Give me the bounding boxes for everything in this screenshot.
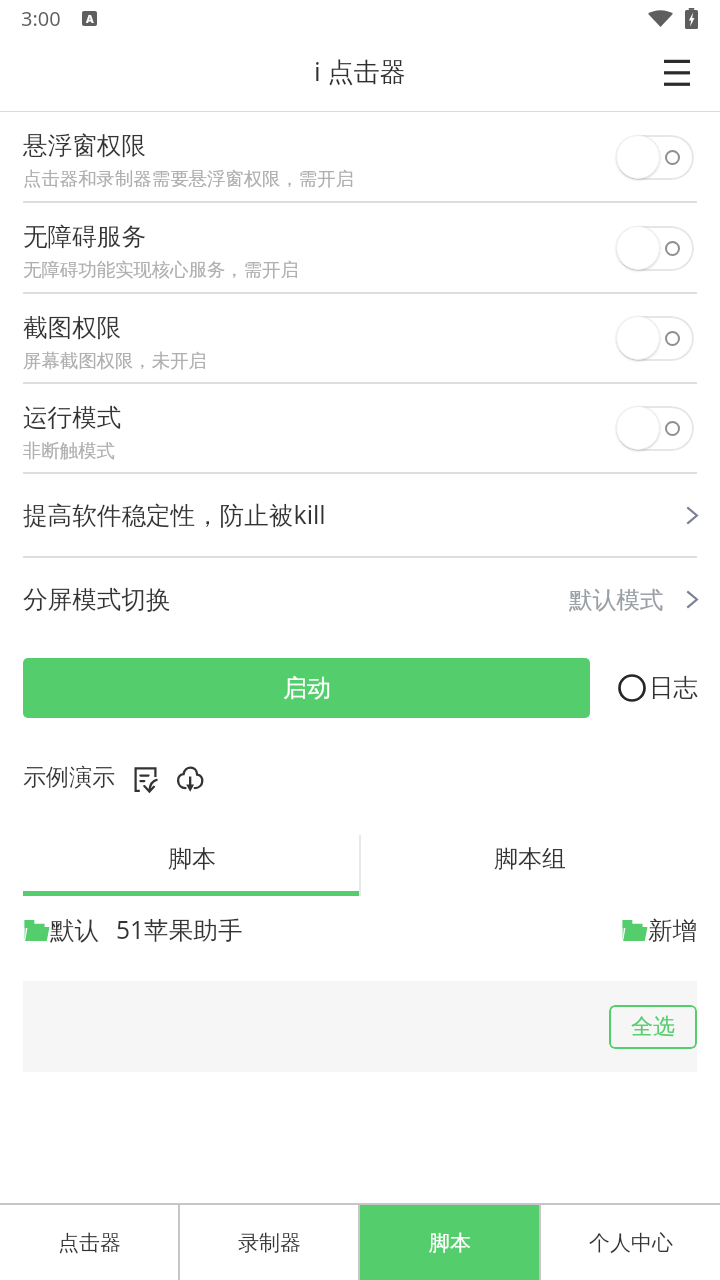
staticText: i 点击器 — [314, 53, 406, 89]
staticText: 录制器 — [238, 1230, 301, 1256]
staticText: 屏幕截图权限，未开启 — [23, 349, 207, 372]
button[interactable]: 提高软件稳定性，防止被kill — [0, 474, 720, 556]
button[interactable]: Menu — [649, 44, 705, 100]
button[interactable]: 开关 悬浮窗权限 — [615, 133, 695, 181]
staticText: 非断触模式 — [23, 439, 115, 462]
button[interactable]: 脚本 — [360, 1205, 539, 1280]
button[interactable]: 录制器 — [180, 1205, 358, 1280]
staticText: 日志 — [649, 672, 699, 703]
staticText: 悬浮窗权限 — [23, 130, 146, 161]
button[interactable]: 开关 无障碍服务 — [615, 224, 695, 272]
staticText: 无障碍功能实现核心服务，需开启 — [23, 258, 299, 281]
button[interactable]: 新增 — [621, 915, 698, 946]
button[interactable]: 启动 — [23, 658, 590, 718]
staticText: 全选 — [631, 1013, 675, 1041]
staticText: 截图权限 — [23, 312, 122, 343]
staticText: 3:00 — [21, 5, 61, 32]
button[interactable]: Download — [170, 759, 208, 797]
button[interactable]: 点击器 — [0, 1205, 178, 1280]
staticText: 默认模式 — [569, 585, 664, 615]
staticText: 脚本 — [429, 1230, 471, 1256]
button[interactable]: 脚本组 — [361, 821, 699, 896]
staticText: 点击器 — [58, 1230, 121, 1256]
staticText: 新增 — [648, 915, 698, 946]
staticText: 脚本 — [168, 844, 216, 874]
staticText: 提高软件稳定性，防止被kill — [23, 498, 326, 532]
button[interactable]: 脚本 — [23, 821, 361, 896]
button[interactable]: 全选 — [609, 1005, 697, 1049]
staticText: 个人中心 — [589, 1230, 673, 1256]
staticText: 运行模式 — [23, 402, 122, 433]
staticText: A — [86, 11, 94, 26]
button[interactable]: 截图权限 — [0, 294, 720, 382]
button[interactable]: 日志 — [612, 672, 699, 703]
staticText: 示例演示 — [23, 763, 115, 792]
button[interactable]: 开关 截图权限 — [615, 314, 695, 362]
button[interactable]: 悬浮窗权限 — [0, 112, 720, 201]
staticText: 无障碍服务 — [23, 221, 146, 252]
staticText: 点击器和录制器需要悬浮窗权限，需开启 — [23, 167, 355, 190]
button[interactable]: 运行模式 — [0, 384, 720, 472]
staticText: 默认 — [50, 915, 100, 946]
button[interactable]: Edit script — [128, 759, 166, 797]
staticText: 脚本组 — [494, 844, 566, 874]
button[interactable]: 分屏模式切换 — [0, 558, 720, 641]
button[interactable]: 51苹果助手 — [116, 913, 243, 947]
button[interactable]: 开关 运行模式 — [615, 404, 695, 452]
button[interactable]: 默认 — [23, 915, 100, 946]
button[interactable]: 无障碍服务 — [0, 203, 720, 292]
button[interactable]: 个人中心 — [541, 1205, 720, 1280]
staticText: 启动 — [283, 673, 331, 703]
staticText: 分屏模式切换 — [23, 584, 171, 615]
